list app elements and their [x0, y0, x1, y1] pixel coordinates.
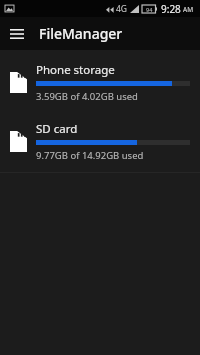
staticText: 94 [146, 6, 153, 13]
button[interactable]: Phone storage [0, 58, 200, 107]
staticText: 9.77GB of 14.92GB used [36, 149, 144, 162]
staticText: AM [183, 5, 194, 14]
staticText: FileManager [39, 24, 123, 43]
button[interactable]: Open navigation menu [4, 21, 30, 47]
staticText: SD card [36, 121, 78, 137]
staticText: 3.59GB of 4.02GB used [36, 90, 138, 103]
staticText: 4G [116, 3, 128, 15]
staticText: Phone storage [36, 62, 115, 78]
button[interactable]: SD card [0, 117, 200, 166]
staticText: 9:28 [161, 2, 181, 16]
